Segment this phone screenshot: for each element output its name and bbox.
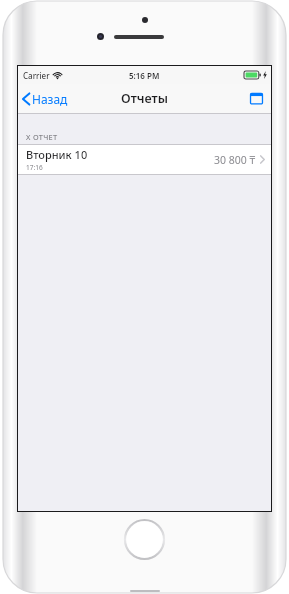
staticText: X ОТЧЕТ [26,132,58,142]
staticText: 5:16 PM [129,70,160,81]
button[interactable]: Calendar [242,84,271,113]
button[interactable]: Вторник 10 [18,145,271,174]
staticText: 17:16 [26,163,43,172]
button[interactable]: Назад [18,84,74,113]
staticText: 30 800 ₸ [214,153,256,167]
staticText: Назад [32,91,68,107]
staticText: Вторник 10 [26,147,88,162]
button[interactable]: Home [124,519,165,560]
staticText: Отчеты [121,90,168,107]
staticText: Carrier [23,70,50,81]
